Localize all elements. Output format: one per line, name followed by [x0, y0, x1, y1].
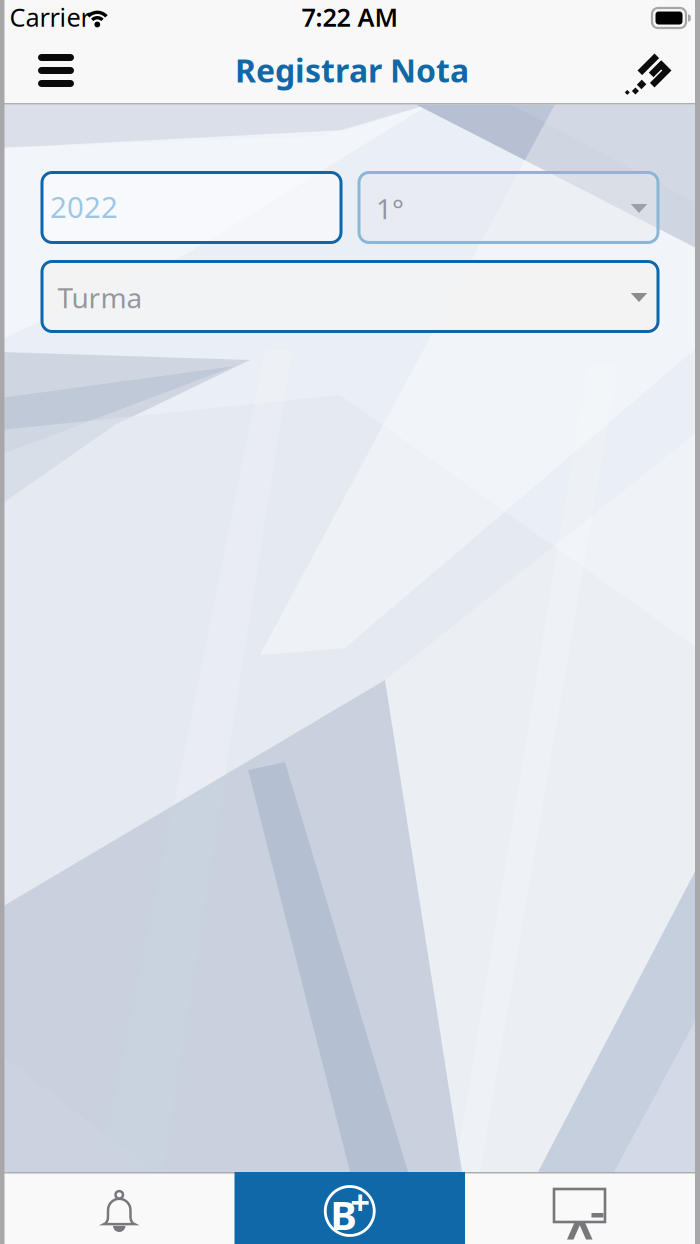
button[interactable]: Notificações: [0, 1172, 234, 1244]
button[interactable]: Menu: [28, 45, 84, 95]
staticText: 2022: [50, 187, 118, 226]
button[interactable]: Sponte: [0, 33, 700, 104]
staticText: 1°: [376, 190, 404, 227]
button[interactable]: Registrar Nota: [234, 1172, 465, 1244]
staticText: Turma: [57, 279, 142, 316]
staticText: Registrar Nota: [235, 49, 469, 91]
staticText: B: [330, 1188, 357, 1241]
button[interactable]: 1°: [359, 172, 658, 242]
staticText: 7:22 AM: [301, 0, 398, 34]
button[interactable]: 2022: [42, 172, 341, 242]
button[interactable]: Turma: [42, 261, 658, 331]
button[interactable]: Mural: [465, 1172, 700, 1244]
staticText: +: [350, 1178, 370, 1224]
staticText: Carrier: [9, 0, 90, 34]
